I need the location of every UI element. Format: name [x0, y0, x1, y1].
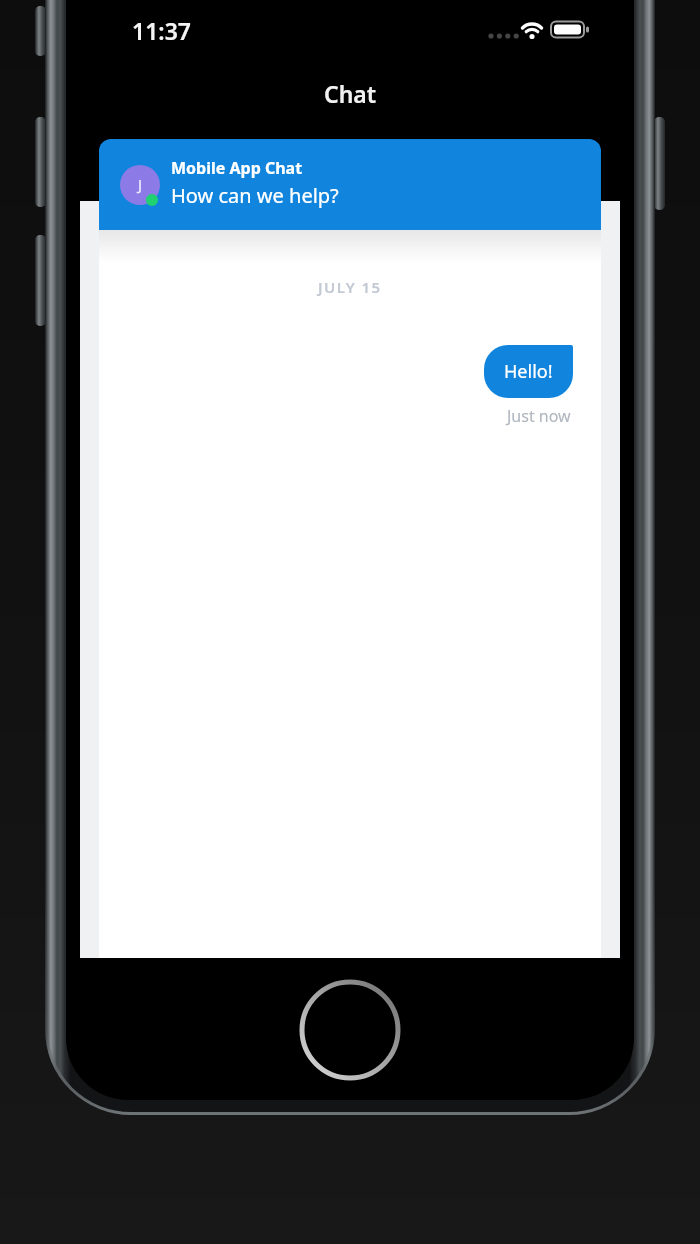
staticText: How can we help?	[171, 182, 339, 209]
button[interactable]: Hello!	[484, 345, 573, 398]
staticText: Mobile App Chat	[171, 157, 303, 179]
staticText: JULY 15	[318, 277, 382, 297]
staticText: J	[138, 174, 143, 194]
staticText: Hello!	[504, 359, 553, 384]
staticText: Chat	[324, 78, 377, 109]
staticText: Just now	[507, 405, 571, 427]
button[interactable]: J	[99, 139, 601, 230]
staticText: 11:37	[132, 15, 191, 46]
